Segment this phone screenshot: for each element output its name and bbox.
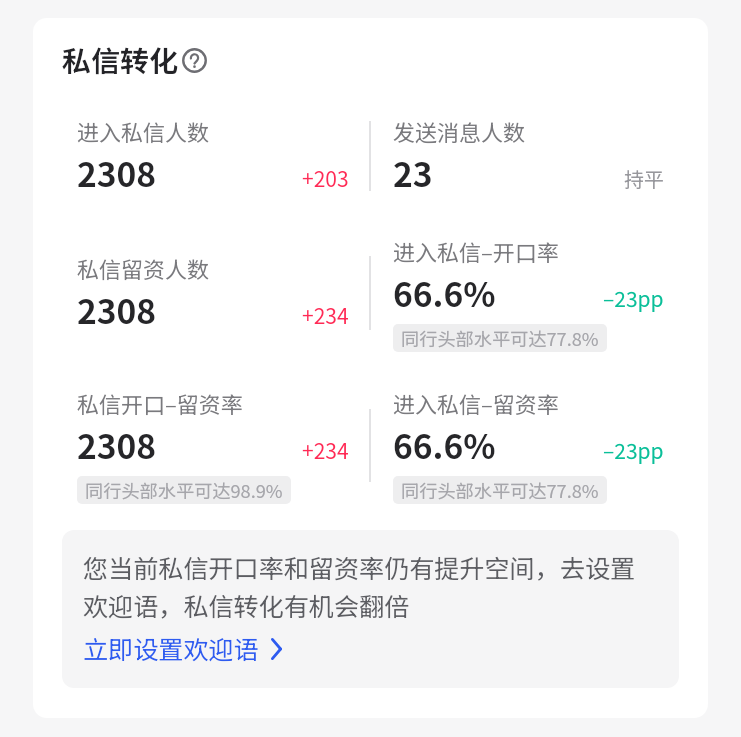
staticText: 私信转化 [62,38,179,80]
staticText: 进入私信人数 [77,115,210,147]
staticText: 私信开口–留资率 [77,387,243,419]
staticText: 66.6% [393,268,496,317]
staticText: 2308 [77,148,157,197]
staticText: 进入私信–留资率 [393,387,559,419]
staticText: 立即设置欢迎语 [83,630,259,666]
staticText: 同行头部水平可达77.8% [401,325,599,351]
staticText: –23pp [603,435,664,465]
staticText: 同行头部水平可达77.8% [401,477,599,503]
staticText: –23pp [603,283,664,313]
staticText: 私信留资人数 [77,252,210,284]
staticText: 2308 [77,285,157,334]
staticText: 23 [393,148,433,197]
staticText: 2308 [77,420,157,469]
staticText: +203 [302,163,349,193]
staticText: 同行头部水平可达98.9% [85,477,283,503]
staticText: 66.6% [393,420,496,469]
staticText: 您当前私信开口率和留资率仍有提升空间，去设置欢迎语，私信转化有机会翻倍 [83,549,659,624]
staticText: 进入私信–开口率 [393,235,559,267]
staticText: +234 [302,300,349,330]
staticText: 持平 [624,164,664,193]
button[interactable]: 立即设置欢迎语 [83,630,282,666]
staticText: +234 [302,435,349,465]
button[interactable]: 指标说明 [180,46,208,74]
staticText: 发送消息人数 [393,115,526,147]
